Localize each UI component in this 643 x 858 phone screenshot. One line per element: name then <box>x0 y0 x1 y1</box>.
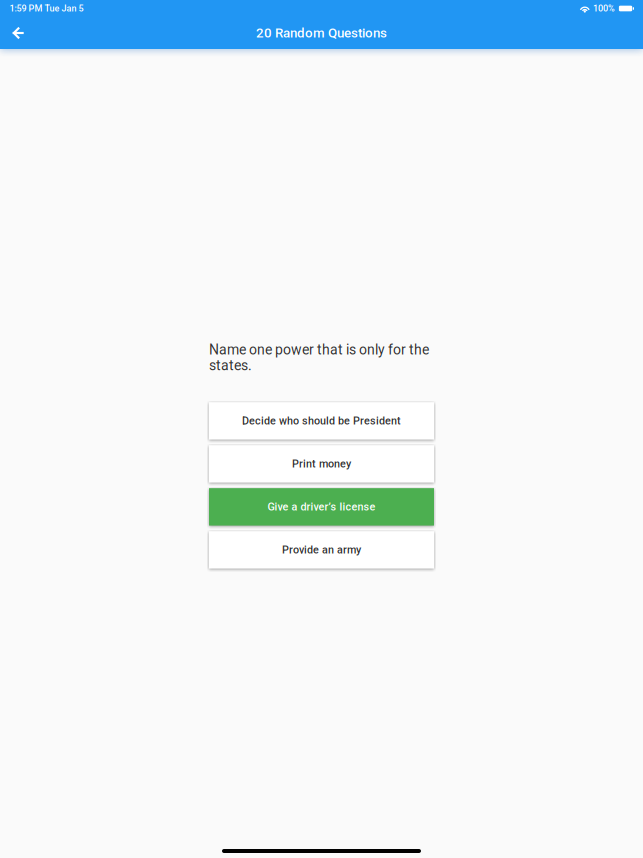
staticText: Decide who should be President <box>242 414 401 427</box>
button[interactable]: Provide an army <box>209 531 434 569</box>
button[interactable]: Give a driver’s license <box>209 488 434 526</box>
staticText: 100% <box>593 3 615 14</box>
staticText: Name one power that is only for the stat… <box>209 342 429 373</box>
staticText: 1:59 PM <box>9 3 42 14</box>
staticText: Tue Jan 5 <box>44 3 83 14</box>
staticText: Provide an army <box>282 543 361 556</box>
button[interactable]: Print money <box>209 445 434 483</box>
staticText: Give a driver’s license <box>267 500 375 513</box>
staticText: Print money <box>292 457 351 470</box>
staticText: 20 Random Questions <box>256 25 387 41</box>
button[interactable]: Back <box>0 17 36 49</box>
button[interactable]: Decide who should be President <box>209 402 434 440</box>
